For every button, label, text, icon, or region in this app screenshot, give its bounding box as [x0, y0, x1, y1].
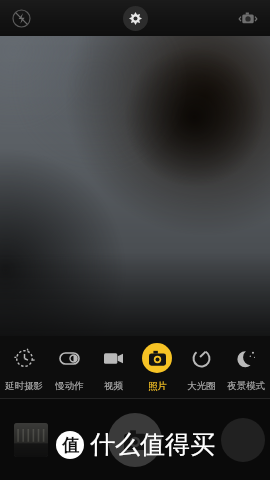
staticText: 值 — [62, 435, 79, 456]
button[interactable]: 大光圈 — [179, 336, 223, 398]
button[interactable]: 延时摄影 — [2, 336, 46, 398]
button[interactable]: More modes — [221, 418, 265, 462]
button[interactable]: 夜景模式 — [224, 336, 268, 398]
button[interactable]: Switch camera — [234, 4, 262, 32]
staticText: 夜景模式 — [227, 380, 265, 392]
button[interactable]: 照片 — [135, 336, 179, 398]
staticText: 延时摄影 — [5, 380, 43, 392]
button[interactable]: 视频 — [91, 336, 135, 398]
button[interactable]: Settings — [123, 6, 148, 31]
staticText: 什么值得买 — [90, 429, 215, 460]
staticText: 慢动作 — [55, 380, 84, 392]
button[interactable]: 慢动作 — [47, 336, 91, 398]
staticText: 视频 — [104, 380, 123, 392]
button[interactable]: Flash off — [9, 6, 33, 30]
button[interactable]: Shutter — [108, 413, 162, 467]
button[interactable]: Gallery — [14, 423, 48, 457]
staticText: 照片 — [148, 380, 167, 392]
staticText: 大光圈 — [187, 380, 216, 392]
